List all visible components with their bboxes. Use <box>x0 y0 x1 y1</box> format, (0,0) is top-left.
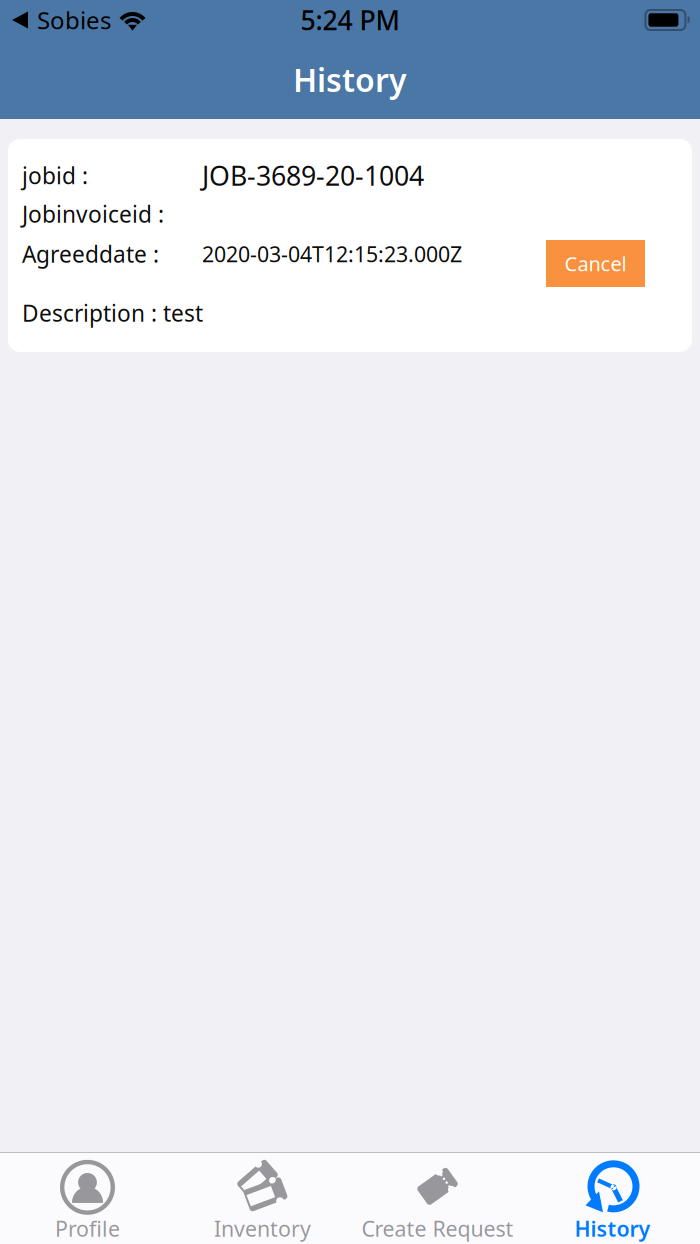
staticText: Jobinvoiceid : <box>22 199 164 229</box>
staticText: Inventory <box>214 1214 311 1243</box>
staticText: Sobies <box>37 4 111 36</box>
button[interactable]: Create Request <box>350 1154 525 1243</box>
staticText: JOB-3689-20-1004 <box>202 158 424 193</box>
staticText: Description : test <box>22 298 203 328</box>
staticText: Cancel <box>564 250 626 277</box>
button[interactable]: History <box>525 1154 700 1243</box>
button[interactable]: Inventory <box>175 1154 350 1243</box>
staticText: 2020-03-04T12:15:23.000Z <box>202 240 462 268</box>
staticText: History <box>293 58 407 101</box>
staticText: Create Request <box>361 1214 513 1243</box>
button[interactable]: Profile <box>0 1154 175 1243</box>
staticText: Profile <box>55 1214 120 1243</box>
staticText: 5:24 PM <box>300 2 399 38</box>
staticText: jobid : <box>22 160 88 190</box>
button[interactable]: Back to Sobies <box>0 4 111 36</box>
button[interactable]: Cancel <box>546 240 645 287</box>
staticText: Agreeddate : <box>22 239 159 269</box>
staticText: History <box>574 1214 650 1243</box>
